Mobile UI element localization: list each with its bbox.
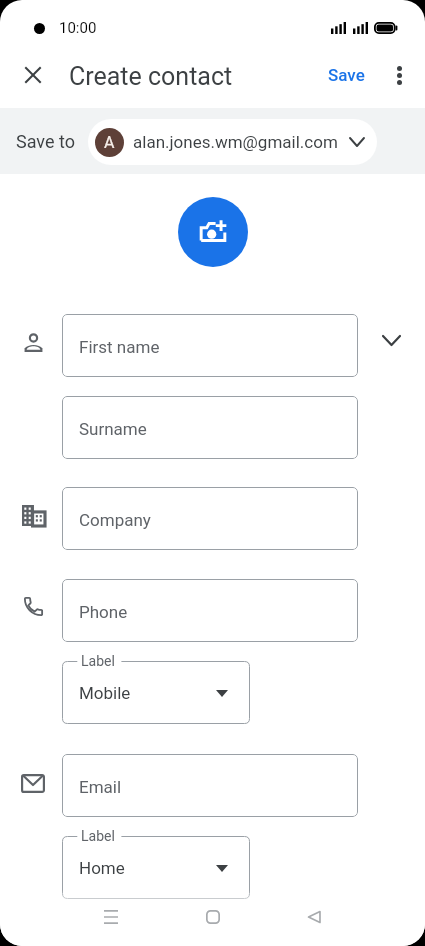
- staticText: 10:00: [59, 19, 97, 37]
- button[interactable]: Expand name fields: [371, 320, 412, 361]
- staticText: alan.jones.wm@gmail.com: [133, 132, 338, 152]
- staticText: First name: [79, 337, 160, 357]
- staticText: Home: [79, 858, 125, 878]
- staticText: Company: [79, 510, 151, 530]
- staticText: Email: [79, 777, 122, 797]
- button[interactable]: Label: [62, 827, 250, 899]
- staticText: Phone: [79, 602, 128, 622]
- button[interactable]: Add photo: [178, 197, 248, 267]
- staticText: Save to: [16, 131, 75, 152]
- staticText: A: [104, 133, 115, 152]
- button[interactable]: More options: [381, 57, 417, 93]
- button[interactable]: Company: [62, 487, 358, 550]
- button[interactable]: Home: [190, 894, 236, 940]
- button[interactable]: Surname: [62, 396, 358, 459]
- staticText: Save: [328, 65, 365, 85]
- button[interactable]: Close: [13, 55, 53, 95]
- button[interactable]: A: [88, 119, 377, 165]
- button[interactable]: First name: [62, 314, 358, 377]
- staticText: Mobile: [79, 683, 131, 703]
- button[interactable]: Back: [291, 894, 337, 940]
- staticText: Create contact: [69, 62, 233, 91]
- staticText: Label: [81, 653, 115, 669]
- button[interactable]: Save: [320, 57, 373, 93]
- staticText: Surname: [79, 419, 147, 439]
- staticText: Label: [81, 828, 115, 844]
- button[interactable]: Phone: [62, 579, 358, 642]
- button[interactable]: Label: [62, 652, 250, 724]
- button[interactable]: Email: [62, 754, 358, 817]
- button[interactable]: Recents: [88, 894, 134, 940]
